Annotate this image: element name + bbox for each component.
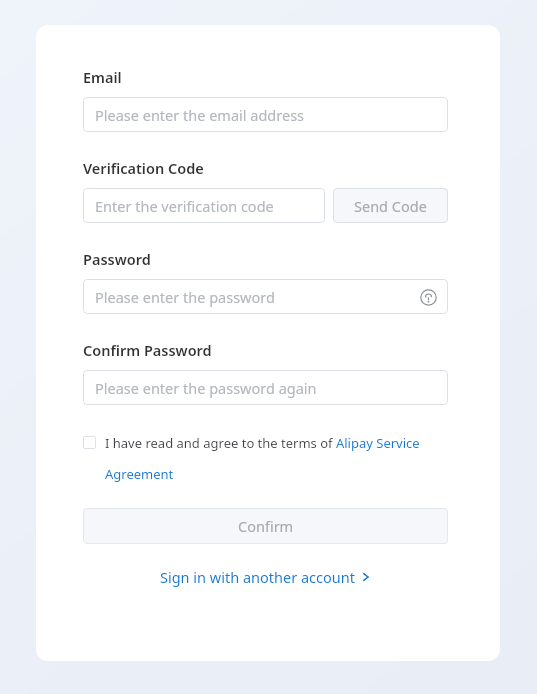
button[interactable]: Password help — [418, 287, 438, 307]
staticText: Send Code — [354, 196, 427, 216]
staticText: Please enter the email address — [95, 105, 305, 125]
staticText: I have read and agree to the terms of Al… — [105, 434, 448, 483]
button[interactable]: Please enter the password again — [83, 370, 448, 405]
staticText: Sign in with another account — [160, 567, 355, 587]
staticText: Enter the verification code — [95, 196, 274, 216]
button[interactable]: I have read and agree to the terms of Al… — [83, 434, 448, 483]
staticText: Email — [83, 67, 122, 87]
staticText: Verification Code — [83, 158, 204, 178]
staticText: Please enter the password — [95, 287, 275, 307]
button[interactable]: Confirm — [83, 508, 448, 544]
staticText: Password — [83, 249, 151, 269]
button[interactable]: Enter the verification code — [83, 188, 325, 223]
staticText: Confirm Password — [83, 340, 212, 360]
button[interactable]: Please enter the email address — [83, 97, 448, 132]
button[interactable]: Send Code — [333, 188, 448, 223]
staticText: Please enter the password again — [95, 378, 317, 398]
staticText: Confirm — [238, 516, 294, 536]
button[interactable]: Sign in with another account — [156, 564, 375, 590]
button[interactable]: Please enter the password — [83, 279, 448, 314]
